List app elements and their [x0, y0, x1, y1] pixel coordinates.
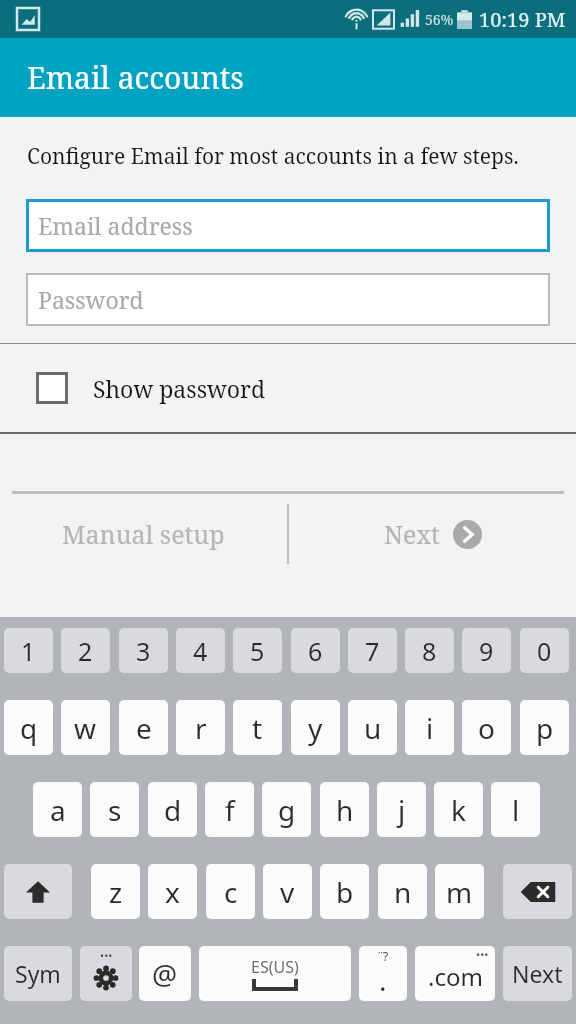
button[interactable]: 9: [462, 628, 511, 673]
staticText: s: [108, 791, 122, 829]
staticText: m: [446, 873, 473, 911]
staticText: Sym: [15, 958, 61, 989]
staticText: t: [252, 709, 263, 747]
button[interactable]: y: [291, 700, 340, 755]
button[interactable]: m: [435, 864, 484, 919]
staticText: c: [224, 873, 238, 911]
staticText: w: [74, 709, 97, 747]
button[interactable]: 6: [291, 628, 340, 673]
staticText: b: [336, 873, 354, 911]
button[interactable]: Password: [26, 273, 550, 326]
button[interactable]: 5: [233, 628, 282, 673]
staticText: 0: [537, 634, 552, 668]
button[interactable]: Shift: [4, 864, 72, 919]
button[interactable]: Next: [289, 494, 576, 574]
button[interactable]: 2: [61, 628, 110, 673]
button[interactable]: Backspace: [503, 864, 572, 919]
staticText: Configure Email for most accounts in a f…: [27, 142, 519, 171]
button[interactable]: t: [233, 700, 282, 755]
staticText: 2: [78, 634, 93, 668]
staticText: 7: [365, 634, 380, 668]
button[interactable]: l: [491, 782, 540, 837]
button[interactable]: d: [148, 782, 197, 837]
staticText: 9: [479, 634, 494, 668]
button[interactable]: 8: [405, 628, 454, 673]
button[interactable]: a: [33, 782, 82, 837]
staticText: e: [136, 709, 152, 747]
staticText: 5: [250, 634, 265, 668]
button[interactable]: •••: [415, 946, 495, 1001]
button[interactable]: p: [520, 700, 569, 755]
staticText: k: [451, 791, 466, 829]
staticText: z: [109, 873, 123, 911]
staticText: v: [280, 873, 295, 911]
staticText: f: [225, 791, 235, 829]
staticText: g: [278, 791, 296, 829]
button[interactable]: o: [462, 700, 511, 755]
staticText: @: [152, 955, 178, 993]
staticText: n: [394, 873, 412, 911]
staticText: 56%: [425, 10, 454, 29]
staticText: Next: [384, 517, 440, 551]
button[interactable]: e: [119, 700, 168, 755]
button[interactable]: 0: [520, 628, 569, 673]
button[interactable]: Manual setup: [0, 494, 287, 574]
button[interactable]: 4: [176, 628, 225, 673]
button[interactable]: z: [91, 864, 140, 919]
staticText: 3: [136, 634, 151, 668]
button[interactable]: Sym: [4, 946, 72, 1001]
staticText: ES(US): [251, 956, 299, 978]
staticText: 10:19 PM: [479, 6, 566, 33]
button[interactable]: i: [405, 700, 454, 755]
staticText: l: [512, 791, 520, 829]
staticText: •••: [100, 948, 113, 963]
button[interactable]: w: [61, 700, 110, 755]
staticText: Show password: [93, 373, 266, 404]
staticText: ˙˙?: [378, 947, 389, 965]
staticText: q: [20, 709, 38, 747]
staticText: j: [398, 791, 406, 829]
staticText: d: [164, 791, 182, 829]
staticText: x: [165, 873, 180, 911]
button[interactable]: b: [320, 864, 369, 919]
button[interactable]: ˙˙?: [359, 946, 407, 1001]
button[interactable]: k: [434, 782, 483, 837]
staticText: .: [379, 961, 387, 999]
staticText: y: [308, 709, 323, 747]
staticText: i: [426, 709, 434, 747]
staticText: Manual setup: [62, 517, 225, 551]
staticText: a: [50, 791, 66, 829]
button[interactable]: Settings: [80, 946, 132, 1001]
staticText: 4: [193, 634, 208, 668]
button[interactable]: 7: [348, 628, 397, 673]
staticText: Next: [512, 958, 563, 989]
button[interactable]: q: [4, 700, 53, 755]
button[interactable]: Show password: [0, 344, 576, 432]
button[interactable]: 1: [4, 628, 53, 673]
staticText: 6: [308, 634, 323, 668]
button[interactable]: j: [377, 782, 426, 837]
button[interactable]: @: [139, 946, 191, 1001]
button[interactable]: r: [176, 700, 225, 755]
button[interactable]: f: [205, 782, 254, 837]
button[interactable]: s: [90, 782, 139, 837]
staticText: u: [364, 709, 382, 747]
button[interactable]: n: [378, 864, 427, 919]
button[interactable]: v: [263, 864, 312, 919]
button[interactable]: g: [262, 782, 311, 837]
button[interactable]: Space: [199, 946, 351, 1001]
staticText: Email accounts: [27, 57, 244, 98]
button[interactable]: Next: [503, 946, 572, 1001]
button[interactable]: c: [206, 864, 255, 919]
staticText: .com: [428, 960, 483, 993]
staticText: o: [478, 709, 495, 747]
button[interactable]: 3: [119, 628, 168, 673]
staticText: 1: [21, 634, 36, 668]
button[interactable]: h: [320, 782, 369, 837]
button[interactable]: Email address: [26, 199, 550, 252]
staticText: Email address: [38, 210, 193, 241]
button[interactable]: u: [348, 700, 397, 755]
staticText: 8: [422, 634, 437, 668]
staticText: p: [536, 709, 554, 747]
button[interactable]: x: [148, 864, 197, 919]
